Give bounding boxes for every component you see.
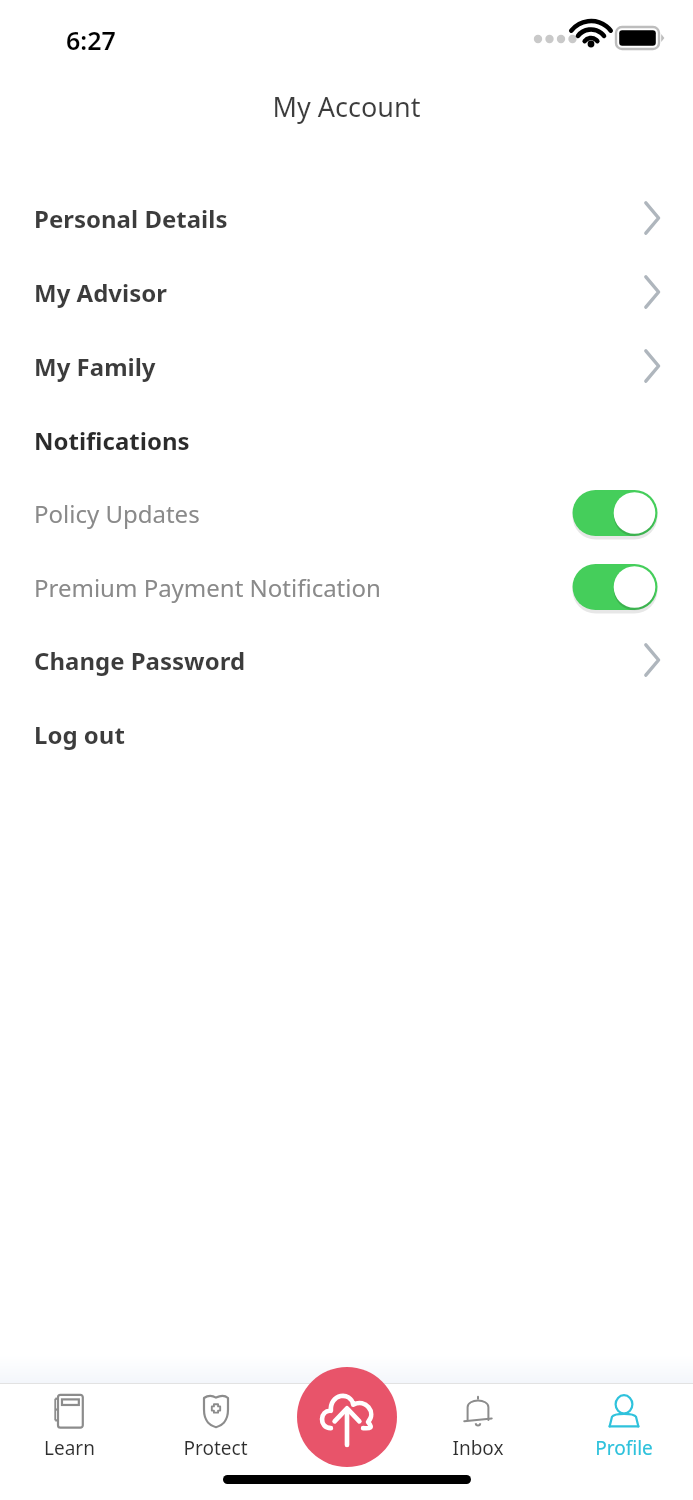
staticText: Policy Updates (34, 497, 200, 530)
button[interactable]: Learn (0, 1384, 139, 1474)
button[interactable]: Profile (554, 1384, 693, 1474)
button[interactable]: Toggle (572, 489, 658, 537)
staticText: Change Password (34, 644, 246, 677)
button[interactable]: Toggle (572, 563, 658, 611)
staticText: My Family (34, 350, 156, 383)
staticText: Protect (183, 1435, 248, 1461)
staticText: My Account (0, 88, 693, 125)
button[interactable]: My Advisor (0, 264, 693, 320)
staticText: Premium Payment Notification (34, 571, 381, 604)
button[interactable]: Personal Details (0, 190, 693, 246)
staticText: Log out (34, 718, 125, 751)
staticText: 6:27 (66, 23, 116, 57)
staticText: Inbox (452, 1435, 504, 1461)
button[interactable]: Protect (146, 1384, 285, 1474)
staticText: Personal Details (34, 202, 228, 235)
staticText: Profile (595, 1435, 653, 1461)
button[interactable]: Upload (297, 1367, 397, 1467)
button[interactable]: Change Password (0, 632, 693, 688)
button[interactable]: Inbox (408, 1384, 547, 1474)
button[interactable]: Premium Payment Notification (0, 559, 693, 615)
button[interactable]: My Family (0, 338, 693, 394)
staticText: Learn (44, 1435, 95, 1461)
staticText: My Advisor (34, 276, 168, 309)
button[interactable]: Policy Updates (0, 485, 693, 541)
button[interactable]: Log out (0, 706, 693, 762)
staticText: Notifications (34, 424, 190, 457)
